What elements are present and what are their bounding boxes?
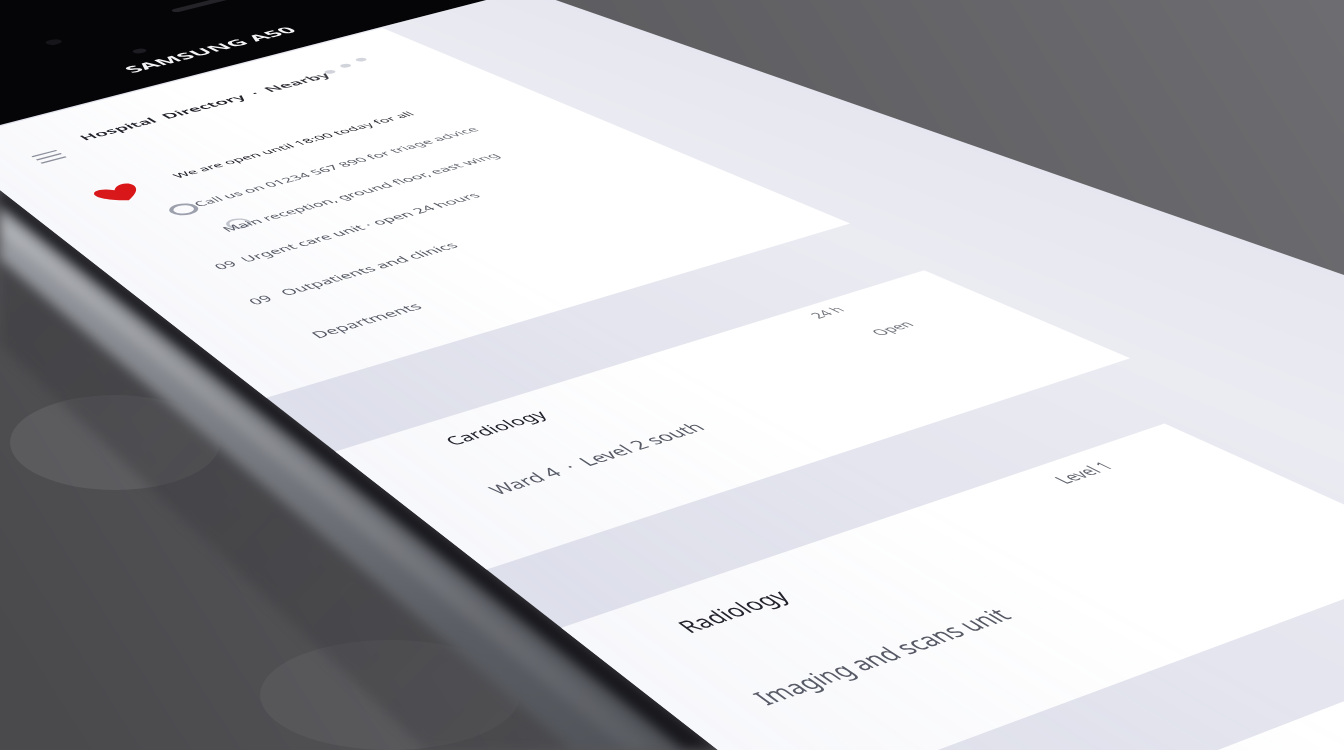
button[interactable] [335, 358, 1130, 451]
button[interactable] [561, 556, 1344, 627]
button[interactable]: Menu [6, 159, 91, 162]
button[interactable] [0, 142, 851, 223]
